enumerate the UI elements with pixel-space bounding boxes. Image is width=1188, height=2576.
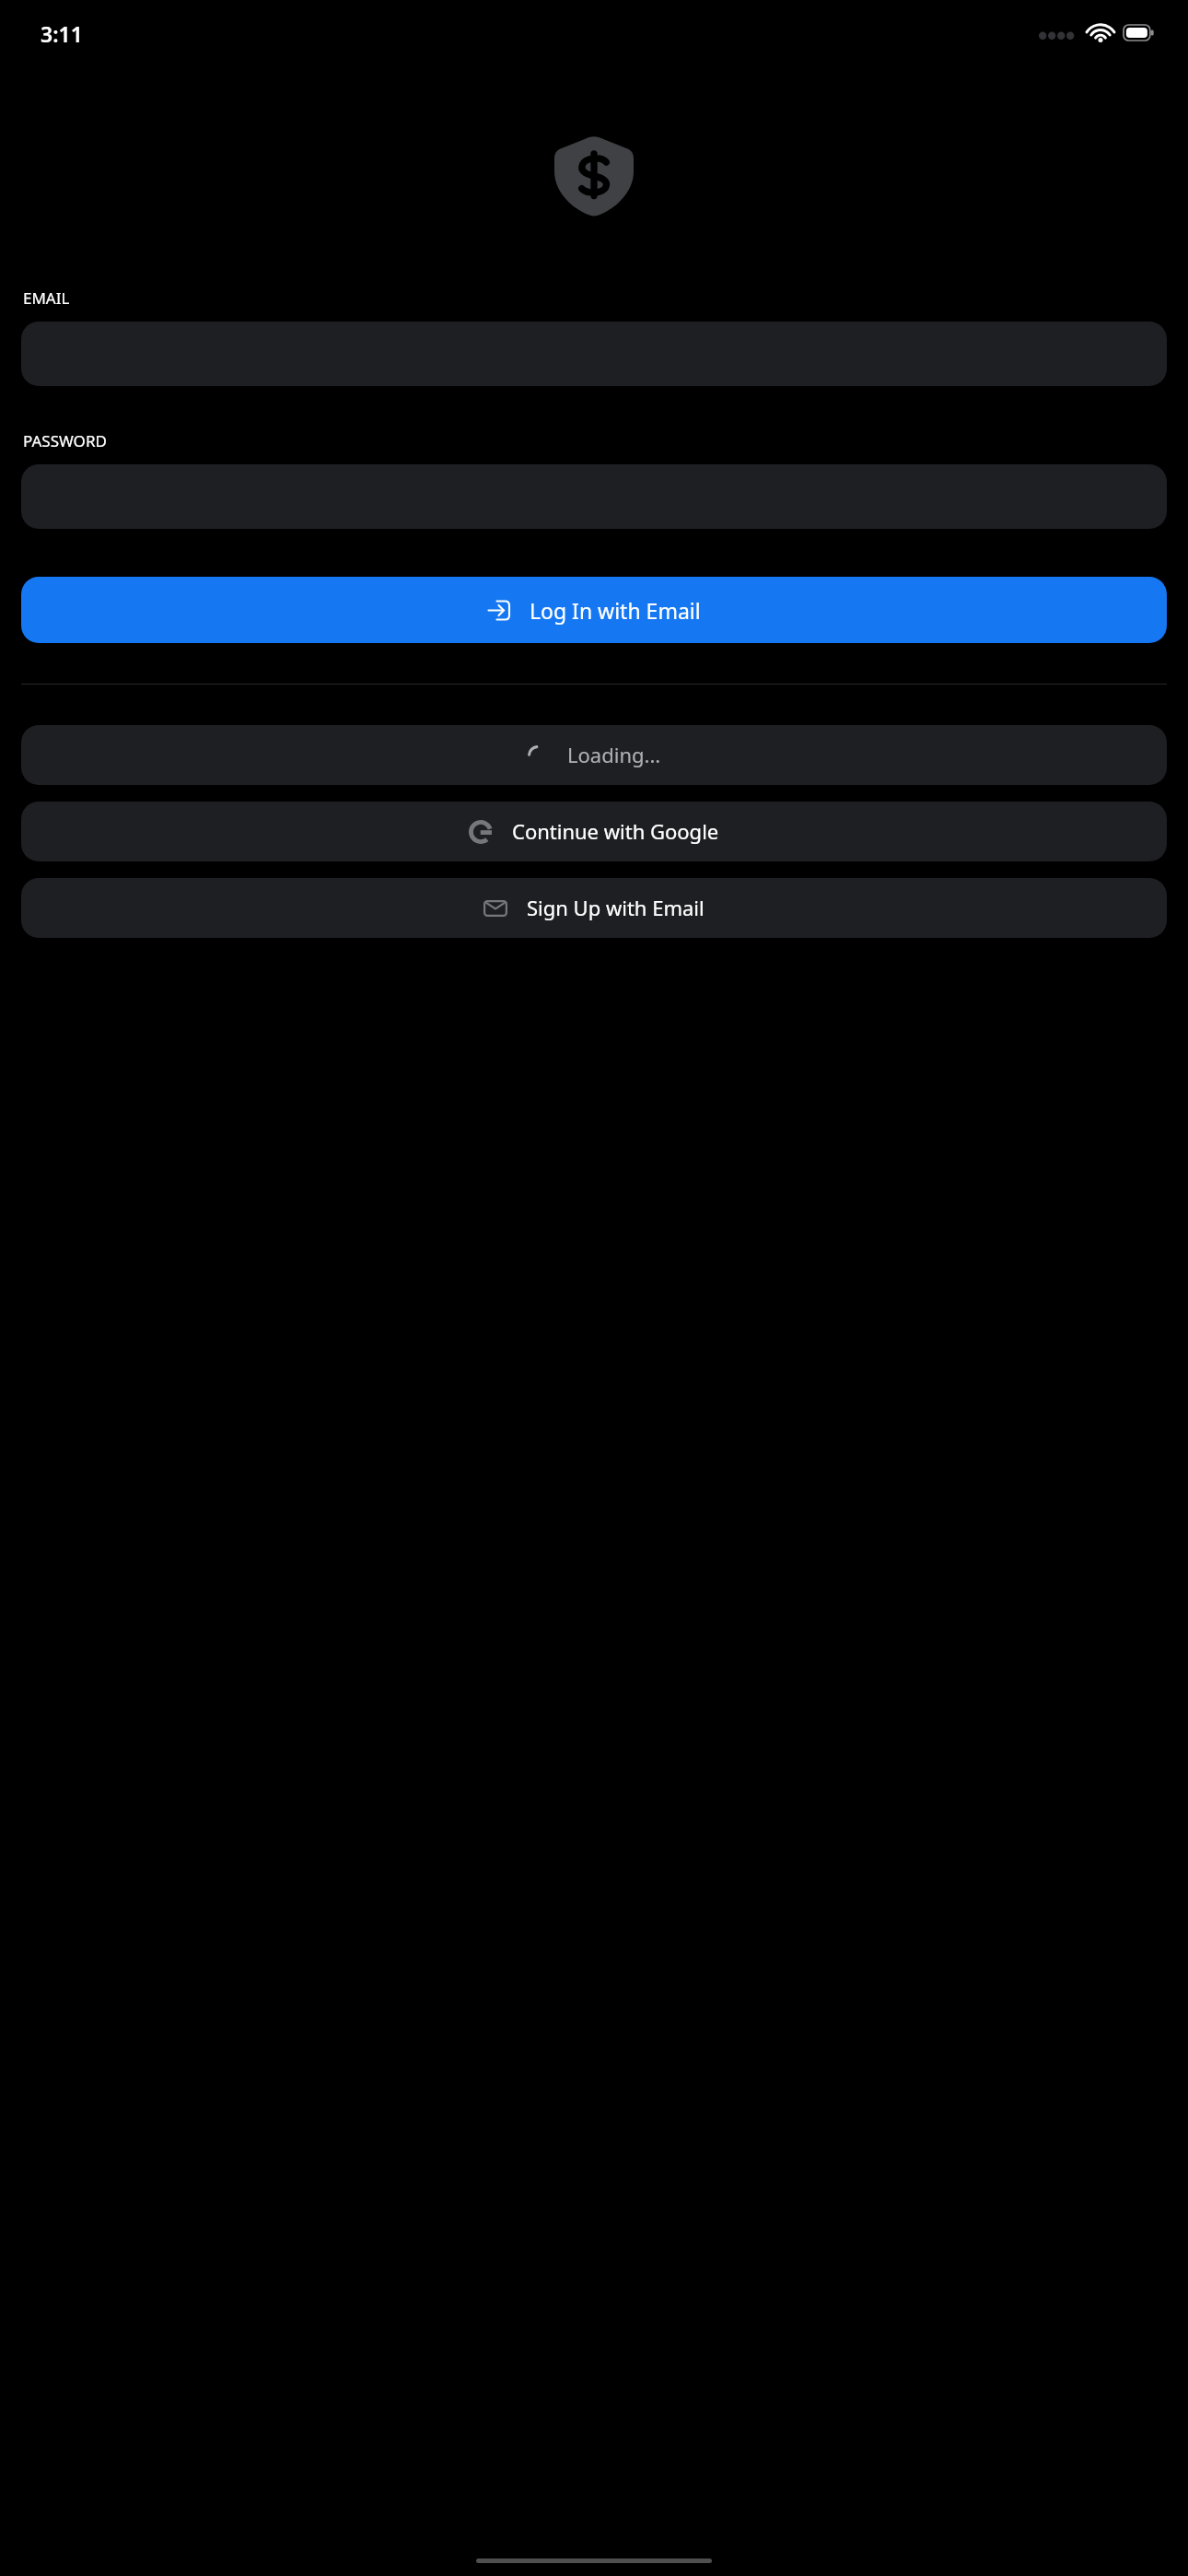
button[interactable]: Loading... [21, 725, 1167, 785]
button[interactable]: Log In with Email [21, 577, 1167, 643]
button[interactable] [21, 464, 1167, 529]
staticText: Sign Up with Email [527, 894, 705, 921]
staticText: Loading... [567, 741, 661, 768]
staticText: 3:11 [41, 19, 83, 48]
staticText: PASSWORD [23, 430, 107, 451]
staticText: Log In with Email [530, 596, 701, 625]
staticText: EMAIL [23, 287, 70, 309]
button[interactable]: Sign Up with Email [21, 878, 1167, 938]
button[interactable]: Continue with Google [21, 802, 1167, 861]
staticText: Continue with Google [512, 817, 719, 845]
